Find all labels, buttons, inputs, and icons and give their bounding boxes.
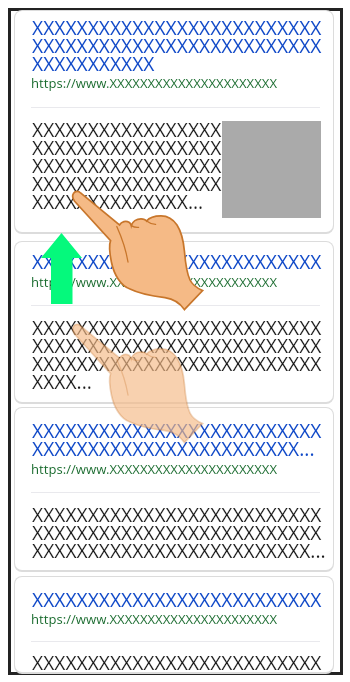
staticText: XXXXXXXXXXXXXXXXXXXXXXXXXX [32, 650, 322, 672]
staticText: https://www.XXXXXXXXXXXXXXXXXXXXXX [31, 460, 278, 478]
staticText: XXXXXXXXXXXXXXXXXXXXXXXXXX XXXXXXXXXXXXX… [32, 502, 326, 564]
staticText: XXXXXXXXXXXXXXXXXXXXXXXXXX [32, 249, 322, 275]
staticText: https://www.XXXXXXXXXXXXXXXXXXXXXX [31, 610, 278, 628]
staticText: XXXXXXXXXXXXXXXXXXXXXXXXXX XXXXXXXXXXXXX… [32, 315, 322, 395]
staticText: https://www.XXXXXXXXXXXXXXXXXXXXXX [31, 273, 278, 291]
staticText: XXXXXXXXXXXXXXXXXXXXXXXXXX XXXXXXXXXXXXX… [32, 418, 322, 462]
staticText: XXXXXXXXXXXXXXXXX XXXXXXXXXXXXXXXXX XXXX… [32, 117, 222, 215]
button[interactable]: XXXXXXXXXXXXXXXXXXXXXXXXXX XXXXXXXXXXXXX… [15, 11, 333, 232]
button[interactable]: XXXXXXXXXXXXXXXXXXXXXXXXXX [15, 242, 333, 402]
staticText: XXXXXXXXXXXXXXXXXXXXXXXXXX [32, 587, 322, 613]
staticText: https://www.XXXXXXXXXXXXXXXXXXXXXX [31, 74, 278, 92]
staticText: XXXXXXXXXXXXXXXXXXXXXXXXXX XXXXXXXXXXXXX… [32, 15, 322, 77]
button[interactable]: XXXXXXXXXXXXXXXXXXXXXXXXXX XXXXXXXXXXXXX… [15, 408, 333, 570]
button[interactable]: XXXXXXXXXXXXXXXXXXXXXXXXXX [15, 577, 333, 672]
other: Scroll up [0, 0, 350, 682]
